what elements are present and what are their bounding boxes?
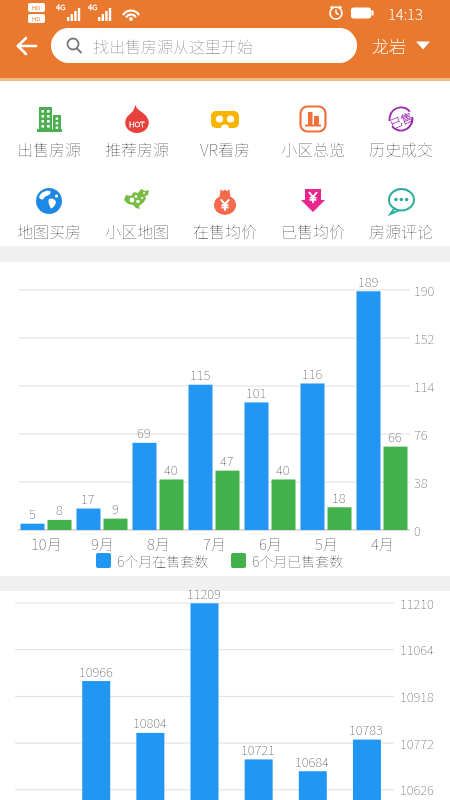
- staticText: 10772: [400, 734, 434, 752]
- staticText: 5月: [315, 533, 338, 553]
- staticText: 推荐房源: [105, 137, 170, 160]
- staticText: 6月: [259, 533, 282, 553]
- staticText: 在售均价: [193, 219, 258, 242]
- staticText: 地图买房: [17, 219, 82, 242]
- button[interactable]: 小区总览: [269, 83, 357, 165]
- staticText: 114: [414, 377, 435, 395]
- staticText: 190: [414, 281, 435, 299]
- staticText: 18: [332, 488, 346, 506]
- staticText: 6个月在售套数: [117, 551, 209, 569]
- staticText: 7月: [203, 533, 226, 553]
- staticText: 5: [29, 504, 36, 522]
- staticText: 4G: [56, 1, 66, 13]
- staticText: HD: [32, 3, 41, 12]
- staticText: 10804: [133, 713, 167, 731]
- staticText: 10721: [241, 740, 275, 758]
- staticText: 9月: [91, 533, 114, 553]
- button[interactable]: VR看房: [181, 83, 269, 165]
- staticText: VR看房: [200, 137, 250, 160]
- staticText: 10月: [31, 533, 62, 553]
- button[interactable]: 小区地图: [93, 165, 181, 246]
- staticText: 76: [414, 425, 428, 443]
- staticText: 17: [81, 489, 95, 507]
- staticText: 11064: [400, 640, 434, 658]
- staticText: 38: [414, 473, 428, 491]
- staticText: 4G: [88, 1, 98, 13]
- button[interactable]: 地图买房: [5, 165, 93, 246]
- staticText: 40: [276, 460, 290, 478]
- staticText: 116: [302, 364, 323, 382]
- staticText: 8: [56, 500, 63, 518]
- button[interactable]: 已售均价: [269, 165, 357, 246]
- staticText: 已售均价: [281, 219, 346, 242]
- staticText: 152: [414, 329, 435, 347]
- staticText: 10626: [400, 780, 434, 798]
- staticText: 10684: [295, 752, 329, 770]
- staticText: 找出售房源从这里开始: [93, 34, 254, 57]
- staticText: 8月: [147, 533, 170, 553]
- staticText: 4月: [371, 533, 394, 553]
- staticText: 66: [388, 427, 402, 445]
- staticText: 小区总览: [281, 137, 346, 160]
- button[interactable]: HOT: [93, 83, 181, 165]
- staticText: 69: [137, 423, 151, 441]
- button[interactable]: 龙岩: [372, 27, 442, 63]
- staticText: 101: [246, 383, 267, 401]
- staticText: 小区地图: [105, 219, 170, 242]
- staticText: 房源评论: [369, 219, 434, 242]
- staticText: 40: [164, 460, 178, 478]
- staticText: 0: [414, 521, 421, 539]
- staticText: 10918: [400, 687, 434, 705]
- button[interactable]: 房源评论: [357, 165, 445, 246]
- staticText: HD: [32, 14, 41, 23]
- button[interactable]: [8, 30, 44, 62]
- staticText: 已售: [387, 107, 416, 132]
- staticText: 11210: [400, 594, 434, 612]
- staticText: HOT: [129, 118, 145, 130]
- button[interactable]: 在售均价: [181, 165, 269, 246]
- staticText: 出售房源: [17, 137, 82, 160]
- staticText: 6个月已售套数: [252, 551, 344, 569]
- button[interactable]: 已售: [357, 83, 445, 165]
- button[interactable]: 出售房源: [5, 83, 93, 165]
- staticText: 14:13: [388, 3, 423, 23]
- staticText: 10966: [79, 662, 113, 680]
- staticText: 47: [220, 451, 234, 469]
- staticText: 115: [190, 365, 211, 383]
- button[interactable]: 找出售房源从这里开始: [51, 28, 357, 63]
- staticText: 龙岩: [372, 33, 406, 58]
- staticText: 11209: [187, 584, 221, 602]
- staticText: 10783: [349, 720, 383, 738]
- staticText: 9: [112, 499, 119, 517]
- staticText: 189: [358, 272, 379, 290]
- staticText: 历史成交: [369, 137, 434, 160]
